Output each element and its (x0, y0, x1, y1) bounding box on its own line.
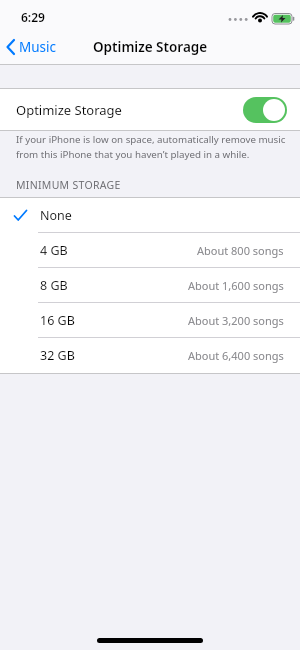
staticText: About 3,200 songs (188, 313, 284, 328)
button[interactable]: Music (6, 38, 57, 56)
staticText: Optimize Storage (93, 38, 208, 56)
staticText: About 6,400 songs (188, 348, 284, 363)
staticText: 16 GB (40, 312, 75, 329)
staticText: About 800 songs (197, 243, 284, 258)
button[interactable]: 8 GB (0, 268, 300, 303)
staticText: 6:29 (21, 9, 45, 25)
button[interactable]: Optimize Storage (0, 89, 300, 130)
staticText: from this iPhone that you haven’t played… (16, 148, 250, 161)
button[interactable]: 4 GB (0, 233, 300, 268)
staticText: Optimize Storage (16, 101, 122, 119)
button[interactable]: 32 GB (0, 338, 300, 373)
staticText: 4 GB (40, 242, 68, 259)
staticText: If your iPhone is low on space, automati… (16, 133, 286, 146)
button[interactable]: None (0, 198, 300, 233)
staticText: None (40, 207, 72, 224)
staticText: 32 GB (40, 347, 75, 364)
button[interactable] (243, 97, 287, 123)
staticText: MINIMUM STORAGE (16, 178, 121, 192)
staticText: 8 GB (40, 277, 68, 294)
staticText: Music (19, 38, 57, 56)
staticText: About 1,600 songs (188, 278, 284, 293)
button[interactable]: 16 GB (0, 303, 300, 338)
